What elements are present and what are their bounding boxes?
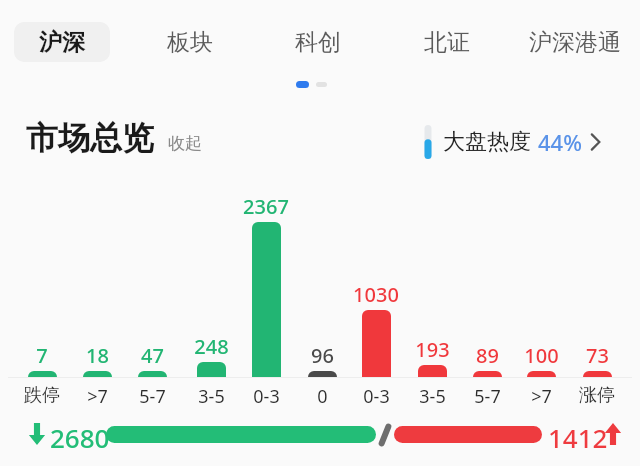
staticText: 涨停 [579,384,615,407]
other: 下跌 [28,423,46,445]
button[interactable] [583,371,612,378]
staticText: 44% [538,127,582,157]
button[interactable] [197,362,226,378]
staticText: 47 [141,342,164,369]
staticText: 跌停 [24,384,60,407]
staticText: >7 [87,384,108,409]
button[interactable]: 大盘热度 [420,122,602,162]
staticText: 5-7 [474,384,501,409]
staticText: 73 [586,342,609,369]
button[interactable] [418,365,447,378]
button[interactable] [362,310,391,378]
staticText: 沪深港通 [529,28,621,57]
staticText: 1412 [548,420,608,455]
staticText: 3-5 [198,384,225,409]
staticText: 2680 [50,420,110,455]
button[interactable]: 板块 [142,22,238,62]
staticText: 100 [524,342,559,369]
staticText: 市场总览 [26,118,154,158]
button[interactable]: 沪深港通 [505,22,640,62]
button[interactable] [28,371,57,378]
button[interactable] [252,222,281,378]
staticText: 3-5 [419,384,446,409]
button[interactable] [473,371,502,378]
staticText: 193 [415,336,450,363]
staticText: 收起 [168,133,202,154]
staticText: 89 [476,342,499,369]
button[interactable]: 北证 [399,22,495,62]
staticText: 0-3 [253,384,280,409]
staticText: 7 [36,342,48,369]
staticText: 大盘热度 [443,128,531,156]
button[interactable]: 市场总览 [26,118,202,158]
staticText: 5-7 [139,384,166,409]
other: 上涨 [604,423,622,445]
staticText: 1030 [353,281,399,308]
button[interactable] [83,371,112,378]
staticText: 北证 [424,28,470,57]
button[interactable] [138,371,167,378]
button[interactable] [106,426,376,443]
staticText: 96 [311,342,334,369]
staticText: 0 [317,384,328,409]
staticText: >7 [531,384,552,409]
button[interactable] [527,371,556,378]
staticText: 沪深 [39,28,85,57]
button[interactable]: 科创 [270,22,366,62]
button[interactable]: 沪深 [14,22,110,62]
staticText: 2367 [243,193,289,220]
staticText: 18 [86,342,109,369]
button[interactable] [308,371,337,378]
staticText: 248 [194,333,229,360]
staticText: 板块 [167,28,213,57]
staticText: 0-3 [363,384,390,409]
button[interactable] [394,426,542,443]
staticText: 科创 [295,28,341,57]
